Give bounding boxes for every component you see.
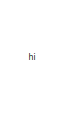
staticText: hi bbox=[28, 52, 35, 62]
